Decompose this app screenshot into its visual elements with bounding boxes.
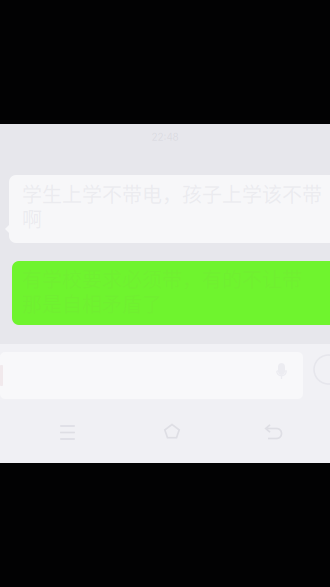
staticText: 学生上学不带电，孩子上学该不带 啊 [22,181,322,231]
staticText: 22:48 [151,131,178,143]
button[interactable]: Voice message [276,362,298,388]
